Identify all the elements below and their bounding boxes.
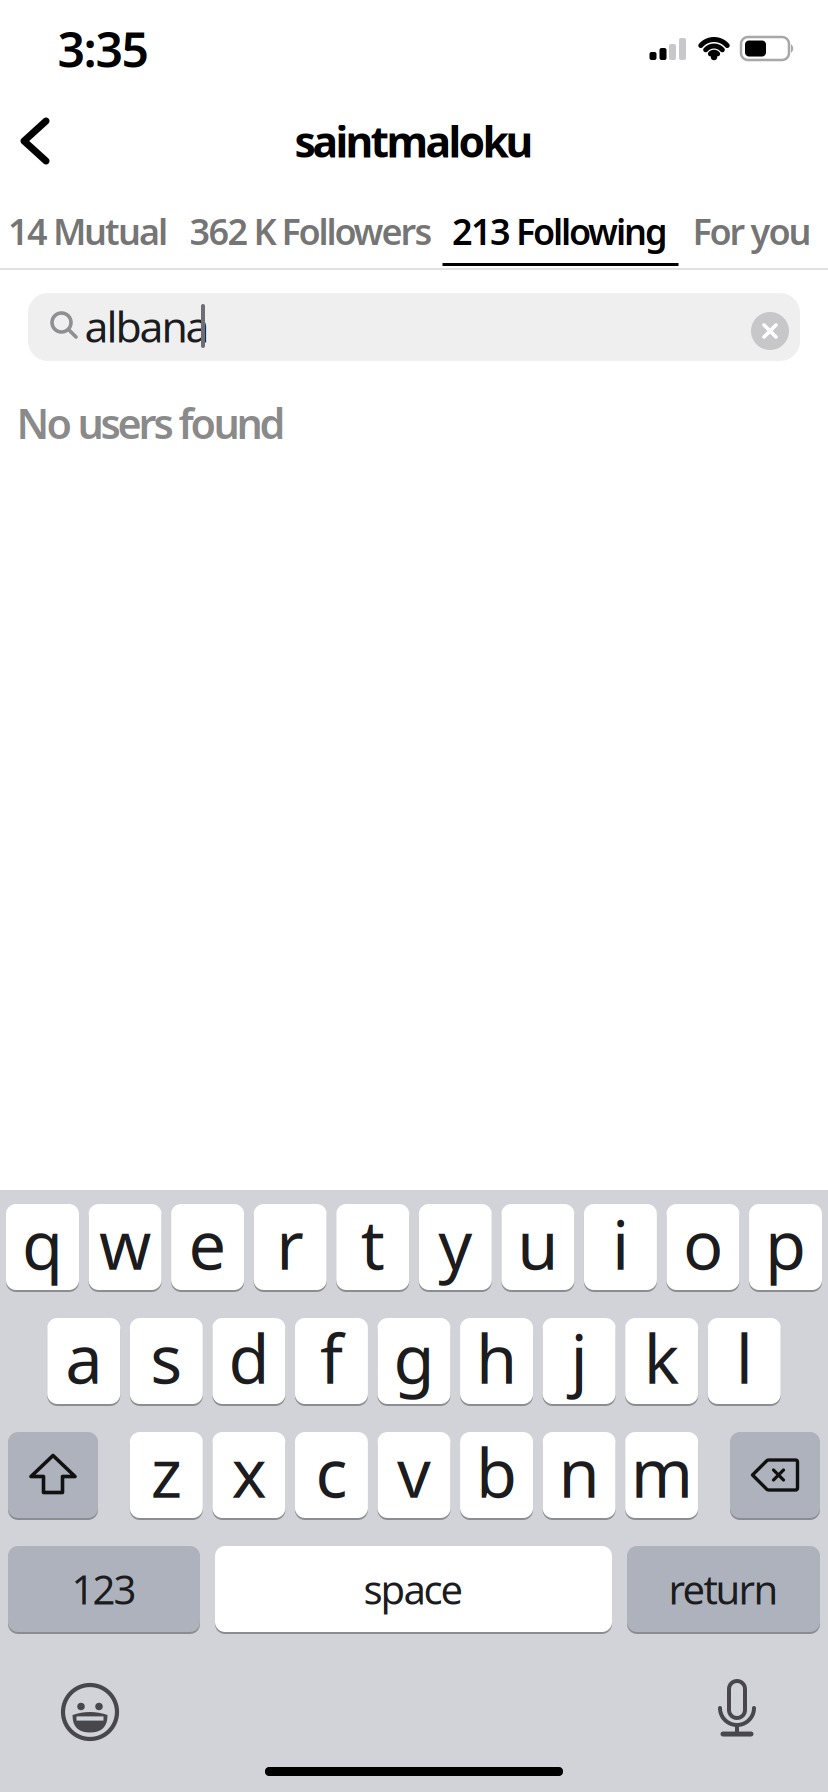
button[interactable]: q (6, 1204, 79, 1290)
button[interactable]: v (377, 1432, 450, 1518)
staticText: m (631, 1428, 693, 1516)
staticText: l (736, 1314, 753, 1402)
button[interactable]: Emoji (63, 1685, 117, 1739)
staticText: j (571, 1314, 588, 1402)
button[interactable]: g (377, 1318, 450, 1404)
button[interactable]: a (47, 1318, 120, 1404)
button[interactable]: d (212, 1318, 285, 1404)
staticText: g (393, 1314, 434, 1402)
staticText: 3:35 (57, 17, 148, 81)
button[interactable]: Back (15, 117, 73, 165)
button[interactable]: p (749, 1204, 822, 1290)
button[interactable]: space (215, 1546, 612, 1632)
button[interactable]: 213 Following (452, 202, 668, 260)
button[interactable]: k (625, 1318, 698, 1404)
button[interactable]: m (625, 1432, 698, 1518)
staticText: 213 Following (452, 207, 668, 255)
button[interactable]: n (543, 1432, 616, 1518)
button[interactable]: b (460, 1432, 533, 1518)
button[interactable]: Search (28, 293, 800, 361)
staticText: f (320, 1314, 343, 1402)
staticText: x (231, 1428, 266, 1516)
button[interactable]: Shift (8, 1432, 98, 1518)
staticText: o (683, 1200, 723, 1288)
staticText: a (65, 1314, 102, 1402)
button[interactable]: z (130, 1432, 203, 1518)
staticText: saintmaloku (294, 113, 533, 169)
staticText: For you (692, 207, 811, 255)
staticText: c (315, 1428, 347, 1516)
staticText: p (765, 1200, 806, 1288)
button[interactable]: For you (692, 202, 811, 260)
button[interactable]: i (584, 1204, 657, 1290)
staticText: n (559, 1428, 600, 1516)
staticText: t (361, 1200, 385, 1288)
button[interactable]: Clear search text (751, 312, 789, 350)
staticText: y (438, 1200, 472, 1288)
staticText: w (99, 1200, 151, 1288)
staticText: space (363, 1562, 463, 1615)
button[interactable]: x (212, 1432, 285, 1518)
button[interactable]: h (460, 1318, 533, 1404)
staticText: return (668, 1562, 778, 1615)
staticText: q (22, 1200, 63, 1288)
button[interactable]: e (171, 1204, 244, 1290)
button[interactable]: w (89, 1204, 162, 1290)
staticText: h (476, 1314, 517, 1402)
button[interactable]: l (708, 1318, 781, 1404)
button[interactable]: Dictation (713, 1681, 761, 1737)
button[interactable]: y (419, 1204, 492, 1290)
staticText: z (151, 1428, 182, 1516)
staticText: 14 Mutual (8, 207, 168, 255)
button[interactable]: r (254, 1204, 327, 1290)
staticText: u (517, 1200, 558, 1288)
staticText: d (228, 1314, 269, 1402)
button[interactable]: c (295, 1432, 368, 1518)
staticText: albana (84, 298, 209, 354)
button[interactable]: 123 (8, 1546, 200, 1632)
button[interactable]: 14 Mutual (8, 202, 168, 260)
staticText: k (644, 1314, 680, 1402)
button[interactable]: 362 K Followers (189, 202, 432, 260)
button[interactable]: f (295, 1318, 368, 1404)
button[interactable]: j (543, 1318, 616, 1404)
button[interactable]: Delete (730, 1432, 820, 1518)
staticText: i (612, 1200, 629, 1288)
button[interactable]: o (666, 1204, 739, 1290)
staticText: b (476, 1428, 517, 1516)
button[interactable]: t (336, 1204, 409, 1290)
staticText: No users found (16, 396, 285, 450)
button[interactable]: return (627, 1546, 820, 1632)
staticText: r (276, 1200, 304, 1288)
staticText: 123 (71, 1562, 136, 1615)
staticText: e (189, 1200, 227, 1288)
staticText: v (397, 1428, 431, 1516)
button[interactable]: u (501, 1204, 574, 1290)
staticText: s (150, 1314, 182, 1402)
button[interactable]: s (130, 1318, 203, 1404)
staticText: 362 K Followers (189, 207, 432, 255)
